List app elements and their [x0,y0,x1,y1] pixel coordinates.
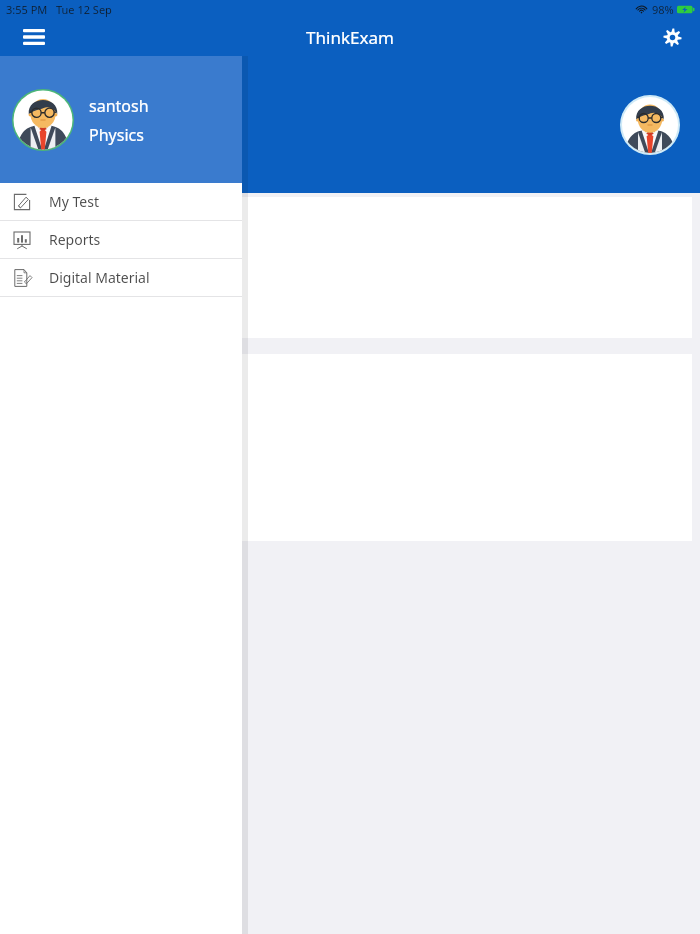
staticText: 3:55 PM [6,2,48,17]
staticText: Tue 12 Sep [56,2,112,17]
button[interactable]: Open navigation menu [14,18,54,56]
staticText: Physics [89,124,144,146]
button[interactable]: Profile [620,95,680,155]
staticText: 98% [652,2,674,17]
button[interactable]: Settings [652,18,692,56]
staticText: Digital Material [49,268,150,287]
button[interactable]: My Test [0,183,242,220]
staticText: My Test [49,192,99,211]
staticText: ThinkExam [306,26,394,49]
button[interactable]: Digital Material [0,259,242,296]
button[interactable]: Reports [0,221,242,258]
button[interactable]: santosh [0,56,242,183]
staticText: Reports [49,230,101,249]
staticText: santosh [89,95,149,117]
